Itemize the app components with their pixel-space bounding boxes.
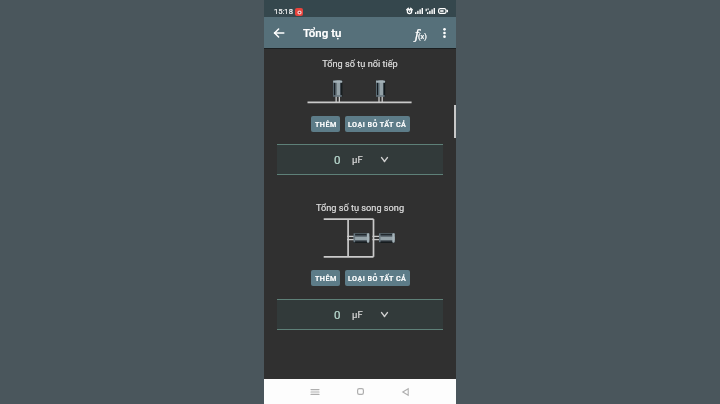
staticText: (x) xyxy=(418,32,427,41)
staticText: µF xyxy=(352,309,363,320)
button[interactable]: THÊM xyxy=(311,270,340,286)
button[interactable]: LOẠI BỎ TẤT CẢ xyxy=(345,116,410,132)
staticText: 15:18 xyxy=(274,7,293,16)
staticText: THÊM xyxy=(315,120,337,128)
button[interactable]: 0 xyxy=(277,299,443,330)
button[interactable]: LOẠI BỎ TẤT CẢ xyxy=(345,270,410,286)
staticText: 0 xyxy=(334,308,341,321)
button[interactable]: THÊM xyxy=(311,116,340,132)
other: Select unit xyxy=(379,309,390,320)
staticText: Tổng số tụ song song xyxy=(264,202,456,213)
staticText: 0 xyxy=(334,153,341,166)
staticText: LOẠI BỎ TẤT CẢ xyxy=(348,274,407,282)
button[interactable]: Back xyxy=(269,23,289,43)
staticText: µF xyxy=(352,154,363,165)
button[interactable]: 0 xyxy=(277,144,443,175)
staticText: THÊM xyxy=(315,274,337,282)
staticText: LOẠI BỎ TẤT CẢ xyxy=(348,120,407,128)
staticText: Tổng số tụ nối tiếp xyxy=(264,58,456,69)
staticText: Tổng tụ xyxy=(303,26,342,39)
button[interactable]: Recents xyxy=(305,379,325,404)
button[interactable]: More options xyxy=(433,22,455,44)
button[interactable]: Formula xyxy=(409,21,433,45)
button[interactable]: Back xyxy=(395,379,415,404)
staticText: f xyxy=(415,26,419,42)
button[interactable]: Home xyxy=(350,379,370,404)
other: Select unit xyxy=(379,154,390,165)
